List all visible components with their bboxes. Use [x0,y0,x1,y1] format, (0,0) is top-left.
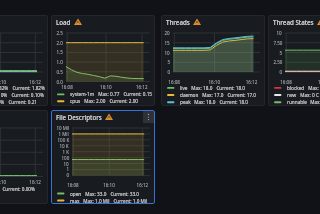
button[interactable]: Panel menu [143,111,154,123]
button[interactable]: Load [51,15,155,106]
staticText: Threads [166,18,190,26]
button[interactable]: CPU Usage [0,15,48,106]
button[interactable]: Thread States [268,15,320,106]
staticText: File Descriptors [56,113,102,121]
staticText: Load [56,18,71,26]
button[interactable]: File Descriptors [51,110,155,204]
button[interactable]: Threads [161,15,265,106]
staticText: Thread States [273,18,314,26]
button[interactable]: GC [0,110,48,204]
